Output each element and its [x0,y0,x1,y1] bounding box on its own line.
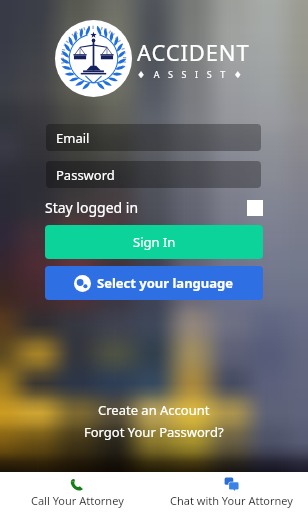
button[interactable]: Password [46,161,261,188]
button[interactable]: Chat with Your Attorney [154,472,308,512]
staticText: Select your language [97,274,234,292]
staticText: ACCIDENT [137,37,250,67]
button[interactable]: Call Your Attorney [0,472,154,512]
button[interactable]: Forgot Your Password? [84,423,224,441]
staticText: Call Your Attorney [31,493,124,508]
button[interactable]: Select your language [45,266,263,300]
other: Call Your Attorney [70,477,84,491]
button[interactable]: Email [46,124,261,151]
staticText: Chat with Your Attorney [170,493,293,508]
button[interactable]: Stay logged in [45,198,263,217]
other: Chat with Your Attorney [224,476,239,491]
staticText: ♦ A S S I S T ♦ [137,68,244,80]
button[interactable]: Sign In [45,225,263,259]
button[interactable]: Create an Account [98,401,210,419]
staticText: Sign In [133,233,176,251]
staticText: Email [56,129,90,147]
staticText: Stay logged in [45,198,139,217]
staticText: Password [56,166,115,184]
